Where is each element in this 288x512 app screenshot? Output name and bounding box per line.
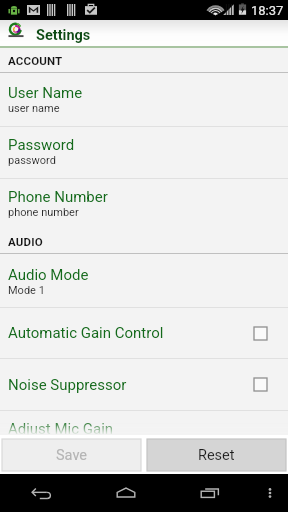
staticText: User Name (8, 84, 83, 102)
button[interactable]: Phone Number (0, 179, 288, 230)
staticText: Audio Mode (8, 266, 89, 284)
button[interactable]: Back (0, 474, 84, 512)
staticText: Adjust Mic Gain (8, 420, 114, 438)
button[interactable]: Password (0, 127, 288, 178)
staticText: mic gain (8, 438, 50, 451)
staticText: Automatic Gain Control (8, 324, 164, 342)
staticText: Password (8, 136, 75, 154)
staticText: AUDIO (8, 235, 43, 248)
button[interactable]: Audio Mode (0, 254, 288, 307)
button[interactable]: Home (84, 474, 168, 512)
staticText: password (8, 154, 56, 167)
staticText: Noise Suppressor (8, 376, 127, 394)
button[interactable]: User Name (0, 73, 288, 126)
staticText: Reset (198, 447, 235, 464)
staticText: 18:37 (251, 3, 284, 18)
button[interactable]: Adjust Mic Gain (0, 411, 288, 435)
staticText: Phone Number (8, 188, 108, 206)
staticText: phone number (8, 206, 79, 219)
button[interactable]: Reset (147, 439, 286, 471)
button[interactable]: Save (2, 439, 141, 471)
staticText: ACCOUNT (8, 54, 63, 67)
button[interactable]: More options (252, 474, 288, 512)
staticText: Save (56, 447, 88, 464)
staticText: user name (8, 102, 60, 115)
staticText: Mode 1 (8, 284, 45, 297)
button[interactable]: Automatic Gain Control (0, 308, 288, 358)
button[interactable]: Recent apps (168, 474, 252, 512)
staticText: Settings (36, 27, 91, 44)
button[interactable]: Noise Suppressor (0, 359, 288, 410)
